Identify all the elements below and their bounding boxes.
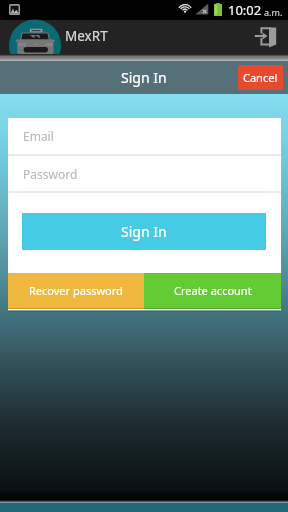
button[interactable]: Sign In xyxy=(22,213,266,250)
button[interactable]: Sign in xyxy=(244,20,288,54)
staticText: MexRT xyxy=(65,27,108,45)
staticText: Email xyxy=(23,128,54,144)
staticText: Cancel xyxy=(243,70,278,85)
button[interactable]: Cancel xyxy=(238,65,283,90)
staticText: Password xyxy=(23,166,78,182)
staticText: Sign In xyxy=(121,68,167,87)
staticText: Recover password xyxy=(29,283,123,298)
staticText: Sign In xyxy=(121,222,167,241)
button[interactable]: Recover password xyxy=(8,273,144,308)
button[interactable]: Create account xyxy=(144,273,281,308)
staticText: Create account xyxy=(174,283,252,298)
staticText: 10:02 xyxy=(228,1,262,19)
staticText: a.m. xyxy=(264,6,283,18)
